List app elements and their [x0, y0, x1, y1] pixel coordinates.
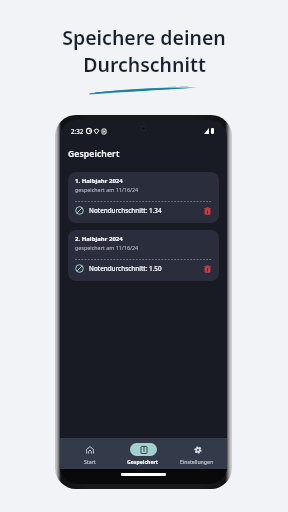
button[interactable]: Start	[63, 438, 116, 469]
button[interactable]: Gespeichert	[116, 438, 170, 469]
staticText: Einstellungen	[180, 458, 214, 465]
button[interactable]: Einstellungen	[170, 438, 224, 469]
staticText: gespeichert am 11/16/24	[75, 244, 139, 251]
staticText: Notendurchschnitt: 1.34	[89, 206, 162, 215]
staticText: Speichere deinen	[62, 24, 226, 51]
staticText: Durchschnitt	[83, 51, 206, 78]
staticText: Start	[84, 458, 96, 465]
button[interactable]: Löschen	[203, 207, 211, 215]
staticText: 1. Halbjahr 2024	[75, 177, 123, 185]
staticText: 2. Halbjahr 2024	[75, 235, 123, 243]
staticText: Notendurchschnitt: 1.50	[89, 264, 162, 273]
button[interactable]: 2. Halbjahr 2024	[68, 230, 219, 281]
button[interactable]: Löschen	[203, 265, 211, 273]
staticText: gespeichert am 11/16/24	[75, 186, 139, 193]
staticText: 2:32	[71, 127, 84, 135]
staticText: Gespeichert	[127, 458, 159, 465]
button[interactable]: 1. Halbjahr 2024	[68, 172, 219, 223]
staticText: Gespeichert	[68, 148, 120, 160]
